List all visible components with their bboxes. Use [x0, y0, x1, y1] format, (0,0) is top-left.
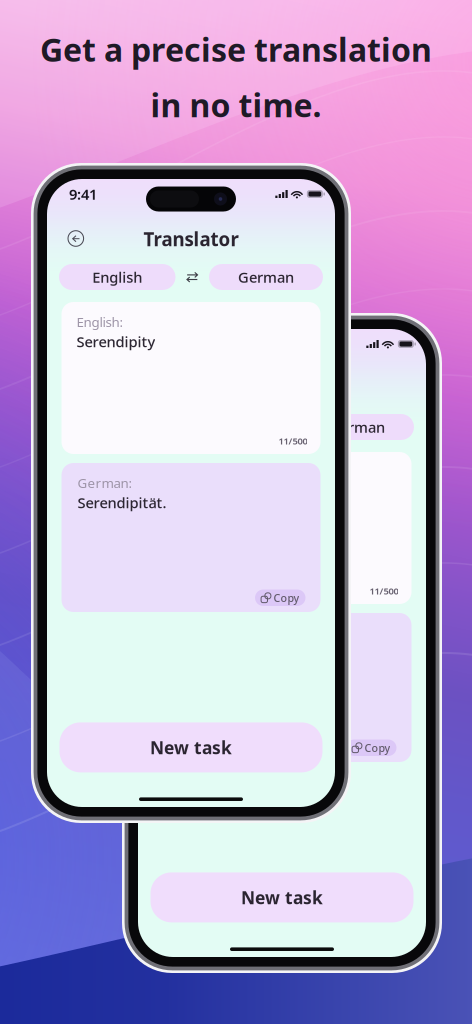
staticText: English:: [76, 313, 123, 331]
staticText: Translator: [234, 377, 329, 401]
staticText: 11/500: [278, 435, 307, 447]
button[interactable]: Copy: [255, 589, 305, 606]
button[interactable]: New task: [150, 872, 413, 922]
staticText: German: [329, 417, 385, 437]
staticText: Serendipity: [76, 332, 155, 351]
staticText: Translator: [143, 227, 238, 251]
staticText: Copy: [273, 591, 299, 605]
staticText: Copy: [364, 741, 390, 755]
button[interactable]: German: [300, 414, 414, 440]
button[interactable]: Swap languages: [185, 269, 200, 284]
staticText: English: [92, 267, 142, 287]
staticText: Serendipität.: [77, 493, 166, 512]
staticText: Get a precise translation: [40, 28, 432, 70]
staticText: New task: [241, 886, 323, 909]
staticText: German: [238, 267, 294, 287]
button[interactable]: Copy: [346, 739, 396, 756]
staticText: in no time.: [150, 83, 321, 126]
staticText: 11/500: [369, 585, 398, 597]
staticText: New task: [150, 736, 232, 759]
button[interactable]: German: [209, 264, 323, 290]
staticText: German:: [77, 474, 132, 492]
button[interactable]: Back: [68, 231, 84, 246]
button[interactable]: New task: [59, 722, 322, 772]
staticText: 9:41: [69, 184, 97, 204]
button[interactable]: English: [59, 264, 175, 290]
